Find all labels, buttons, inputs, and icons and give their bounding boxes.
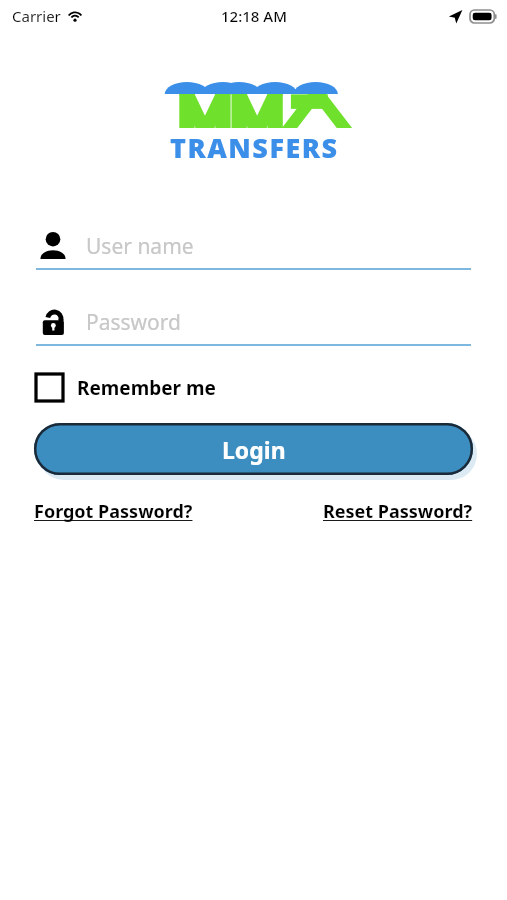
staticText: Remember me: [77, 375, 216, 401]
staticText: Reset Password?: [323, 499, 473, 524]
button[interactable]: User name: [36, 224, 471, 270]
other: Password: [36, 305, 70, 339]
button[interactable]: Forgot Password?: [34, 499, 193, 524]
button[interactable]: Password: [36, 300, 471, 346]
other: User name: [36, 229, 70, 263]
button[interactable]: Remember me: [36, 374, 216, 401]
staticText: Forgot Password?: [34, 499, 193, 524]
staticText: 12:18 AM: [221, 6, 287, 26]
staticText: User name: [86, 232, 194, 261]
button[interactable]: Reset Password?: [323, 499, 473, 524]
button[interactable]: Login: [34, 423, 473, 475]
staticText: Password: [86, 308, 181, 337]
staticText: TRANSFERS: [170, 129, 339, 166]
staticText: Login: [222, 434, 286, 465]
staticText: Carrier: [12, 6, 61, 26]
